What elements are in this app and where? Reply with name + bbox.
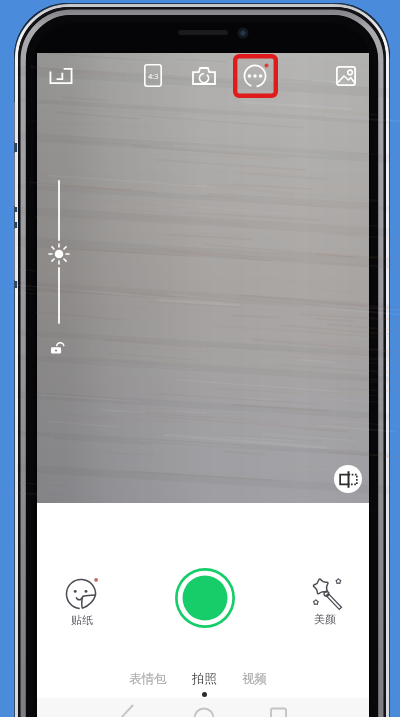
button[interactable]: 美颜 — [301, 577, 349, 633]
staticText: 美颜 — [314, 612, 336, 626]
button[interactable]: Shutter — [175, 568, 235, 628]
button[interactable]: 视频 — [238, 668, 271, 690]
button[interactable]: Aspect ratio 4 to 3 — [134, 56, 172, 94]
staticText: 4:3 — [148, 71, 159, 81]
button[interactable]: Mirror — [334, 465, 362, 493]
button[interactable]: 表情包 — [125, 668, 171, 690]
staticText: 贴纸 — [71, 613, 93, 627]
button[interactable]: Flash — [42, 57, 80, 95]
button[interactable]: Lock exposure — [48, 338, 68, 358]
button[interactable]: 贴纸 — [58, 578, 106, 634]
staticText: 视频 — [242, 671, 267, 687]
staticText: 表情包 — [129, 671, 167, 687]
button[interactable]: Home — [147, 698, 258, 717]
staticText: 拍照 — [192, 671, 217, 687]
button[interactable]: Recent apps — [258, 698, 369, 717]
button[interactable]: More options — [233, 54, 278, 98]
button[interactable]: Gallery — [327, 57, 365, 95]
button[interactable]: Switch camera — [185, 57, 223, 95]
button[interactable]: Back — [37, 698, 147, 717]
button[interactable]: 拍照 — [188, 668, 221, 700]
